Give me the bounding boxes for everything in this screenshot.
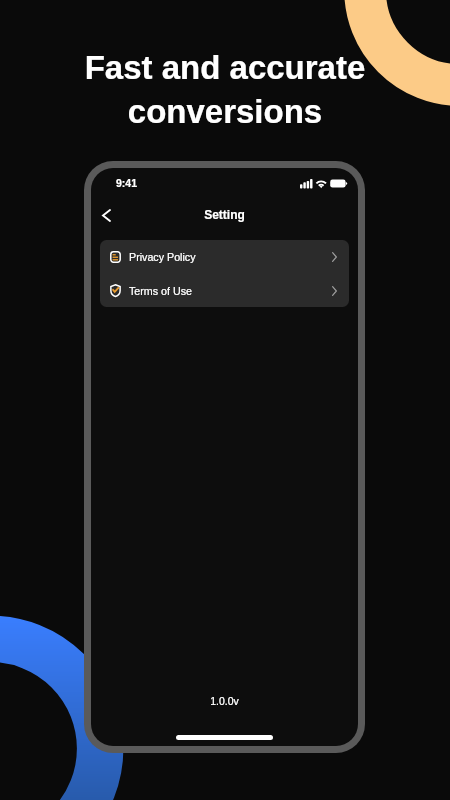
staticText: Fast and accurate conversions [0,49,450,130]
staticText: 1.0.0v [91,695,358,707]
button[interactable]: Back [92,201,121,230]
staticText: Privacy Policy [129,251,196,263]
button[interactable]: Privacy Policy [100,240,349,274]
staticText: 9:41 [116,177,138,189]
staticText: Terms of Use [129,285,192,297]
staticText: Setting [91,208,358,221]
button[interactable]: Terms of Use [100,274,349,307]
